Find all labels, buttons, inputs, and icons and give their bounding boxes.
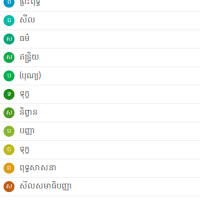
staticText: ស: [6, 53, 12, 62]
staticText: ព: [7, 163, 11, 173]
button[interactable]: ព: [0, 159, 200, 178]
staticText: ស: [6, 182, 12, 191]
staticText: សីលសមាធិបញ្ញា: [19, 181, 71, 192]
staticText: ស: [6, 108, 12, 118]
button[interactable]: ច: [0, 141, 200, 159]
staticText: ព្រះពុទ្ធ: [19, 0, 40, 8]
staticText: ទុក្ខ: [19, 89, 29, 100]
staticText: (បុណ្យ): [19, 70, 40, 82]
staticText: ទុក្ខ: [19, 144, 29, 155]
staticText: ពុទ្ធសាសនា: [19, 162, 56, 174]
staticText: ធ: [7, 16, 11, 25]
staticText: ព: [7, 0, 11, 7]
staticText: ប: [7, 71, 11, 81]
staticText: ទ: [7, 90, 11, 99]
button[interactable]: ស: [0, 49, 200, 67]
staticText: សីល: [19, 15, 35, 26]
button[interactable]: ព: [0, 0, 200, 12]
button[interactable]: ប: [0, 67, 200, 86]
button[interactable]: ស: [0, 30, 200, 49]
staticText: ប: [7, 126, 11, 136]
staticText: ស: [6, 34, 12, 44]
staticText: ច: [7, 145, 11, 154]
staticText: និព្វាន: [19, 107, 37, 118]
button[interactable]: ប: [0, 123, 200, 141]
button[interactable]: ធ: [0, 12, 200, 30]
button[interactable]: ស: [0, 178, 200, 196]
button[interactable]: ស: [0, 104, 200, 122]
staticText: ឥន្រ្ទិយ: [19, 52, 39, 63]
button[interactable]: ទ: [0, 86, 200, 104]
staticText: បញ្ញា: [19, 126, 34, 137]
staticText: ធម៌: [19, 33, 29, 45]
